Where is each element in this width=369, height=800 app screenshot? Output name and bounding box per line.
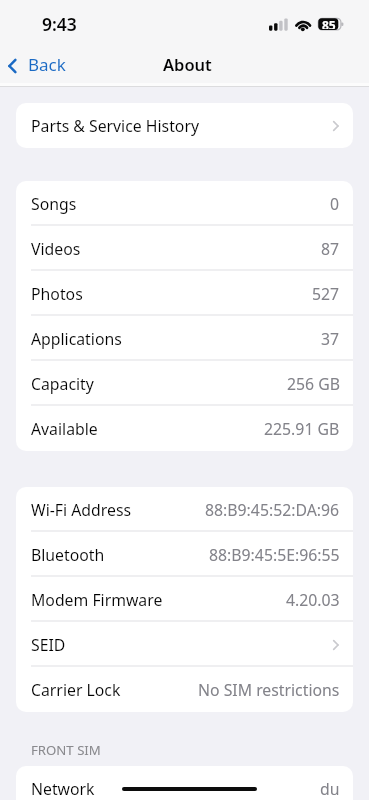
staticText: Parts & Service History: [31, 115, 199, 137]
staticText: 527: [312, 283, 340, 305]
button[interactable]: Modem Firmware: [16, 577, 353, 622]
staticText: 37: [321, 328, 340, 350]
button[interactable]: Back: [7, 44, 66, 83]
staticText: 85: [322, 17, 336, 29]
staticText: Videos: [31, 238, 81, 260]
staticText: 88:B9:45:52:DA:96: [205, 499, 340, 521]
staticText: FRONT SIM: [31, 741, 101, 759]
staticText: Capacity: [31, 373, 94, 395]
staticText: 256 GB: [287, 373, 340, 395]
button[interactable]: Videos: [16, 226, 353, 271]
button[interactable]: Photos: [16, 271, 353, 316]
staticText: 4.20.03: [286, 589, 340, 611]
button[interactable]: Songs: [16, 181, 353, 226]
staticText: 225.91 GB: [264, 418, 340, 440]
staticText: Photos: [31, 283, 83, 305]
staticText: Available: [31, 418, 98, 440]
staticText: Songs: [31, 193, 77, 215]
staticText: 0: [330, 193, 340, 215]
staticText: SEID: [31, 634, 66, 656]
staticText: No SIM restrictions: [198, 679, 340, 701]
button[interactable]: Bluetooth: [16, 532, 353, 577]
staticText: 88:B9:45:5E:96:55: [209, 544, 340, 566]
button[interactable]: Carrier Lock: [16, 667, 353, 712]
staticText: 9:43: [42, 12, 77, 36]
staticText: Bluetooth: [31, 544, 105, 566]
staticText: Carrier Lock: [31, 679, 121, 701]
button[interactable]: Capacity: [16, 361, 353, 406]
staticText: Wi-Fi Address: [31, 499, 132, 521]
staticText: du: [320, 778, 340, 800]
button[interactable]: Wi-Fi Address: [16, 487, 353, 532]
staticText: About: [163, 53, 212, 75]
button[interactable]: Available: [16, 406, 353, 451]
staticText: Back: [28, 53, 66, 76]
button[interactable]: SEID: [16, 622, 353, 667]
button[interactable]: Parts & Service History: [16, 103, 353, 148]
button[interactable]: Network: [16, 766, 353, 800]
staticText: 87: [321, 238, 340, 260]
button[interactable]: Applications: [16, 316, 353, 361]
staticText: Modem Firmware: [31, 589, 163, 611]
staticText: Applications: [31, 328, 122, 350]
staticText: Network: [31, 778, 95, 800]
